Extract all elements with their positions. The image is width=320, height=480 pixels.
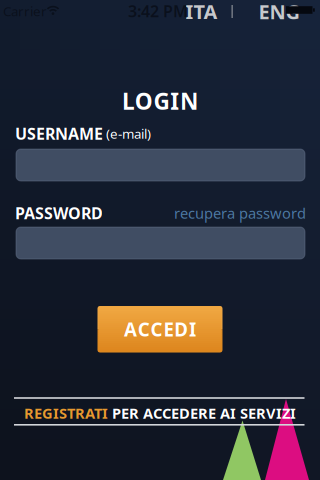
staticText: REGISTRATI: [24, 403, 108, 423]
staticText: ITA: [185, 0, 217, 25]
staticText: PER ACCEDERE AI SERVIZI: [112, 403, 296, 423]
staticText: USERNAME: [15, 123, 103, 144]
staticText: PASSWORD: [15, 202, 103, 224]
staticText: (e-mail): [103, 125, 151, 142]
staticText: 3:42 PM: [128, 0, 188, 22]
staticText: Carrier: [3, 2, 47, 20]
staticText: ACCEDI: [124, 317, 196, 342]
staticText: ENG: [258, 0, 299, 25]
staticText: recupera password: [174, 203, 306, 223]
staticText: LOGIN: [122, 86, 198, 116]
